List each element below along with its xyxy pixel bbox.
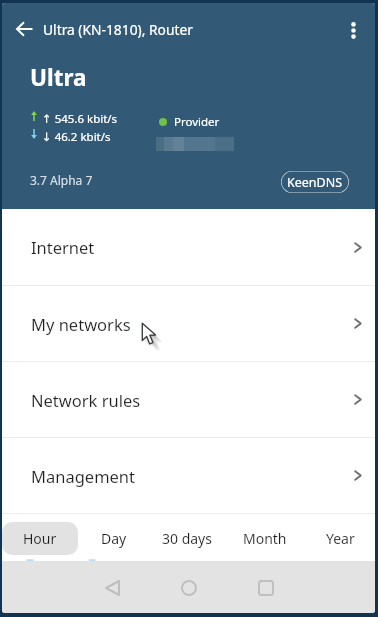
button[interactable]: Day — [79, 522, 149, 555]
button[interactable]: Back — [92, 568, 132, 608]
staticText: ↑ 545.6 kbit/s — [42, 111, 118, 127]
staticText: Day — [101, 529, 127, 548]
button[interactable]: KeenDNS — [281, 171, 349, 193]
staticText: Ultra (KN-1810), Router — [43, 20, 193, 39]
staticText: 30 days — [162, 529, 212, 548]
staticText: ↓ 46.2 kbit/s — [42, 129, 111, 145]
staticText: Provider — [174, 114, 220, 130]
button[interactable]: Home — [169, 568, 209, 608]
staticText: KeenDNS — [287, 174, 343, 191]
staticText: Ultra — [30, 62, 87, 93]
staticText: 3.7 Alpha 7 — [30, 172, 93, 188]
button[interactable]: Internet — [2, 209, 375, 285]
button[interactable]: Network rules — [2, 362, 375, 437]
staticText: Network rules — [31, 389, 141, 411]
staticText: My networks — [31, 313, 131, 335]
staticText: Year — [326, 529, 355, 548]
button[interactable]: Recents — [246, 568, 286, 608]
button[interactable]: Hour — [2, 522, 78, 555]
button[interactable]: Management — [2, 438, 375, 513]
button[interactable]: 30 days — [152, 522, 222, 555]
button[interactable]: Year — [305, 522, 375, 555]
staticText: Internet — [31, 236, 95, 258]
button[interactable]: Back — [4, 9, 44, 49]
button[interactable]: My networks — [2, 286, 375, 361]
staticText: Hour — [23, 529, 57, 548]
button[interactable]: More options — [333, 10, 373, 50]
staticText: Management — [31, 465, 136, 487]
button[interactable]: Month — [230, 522, 300, 555]
staticText: Month — [243, 529, 287, 548]
